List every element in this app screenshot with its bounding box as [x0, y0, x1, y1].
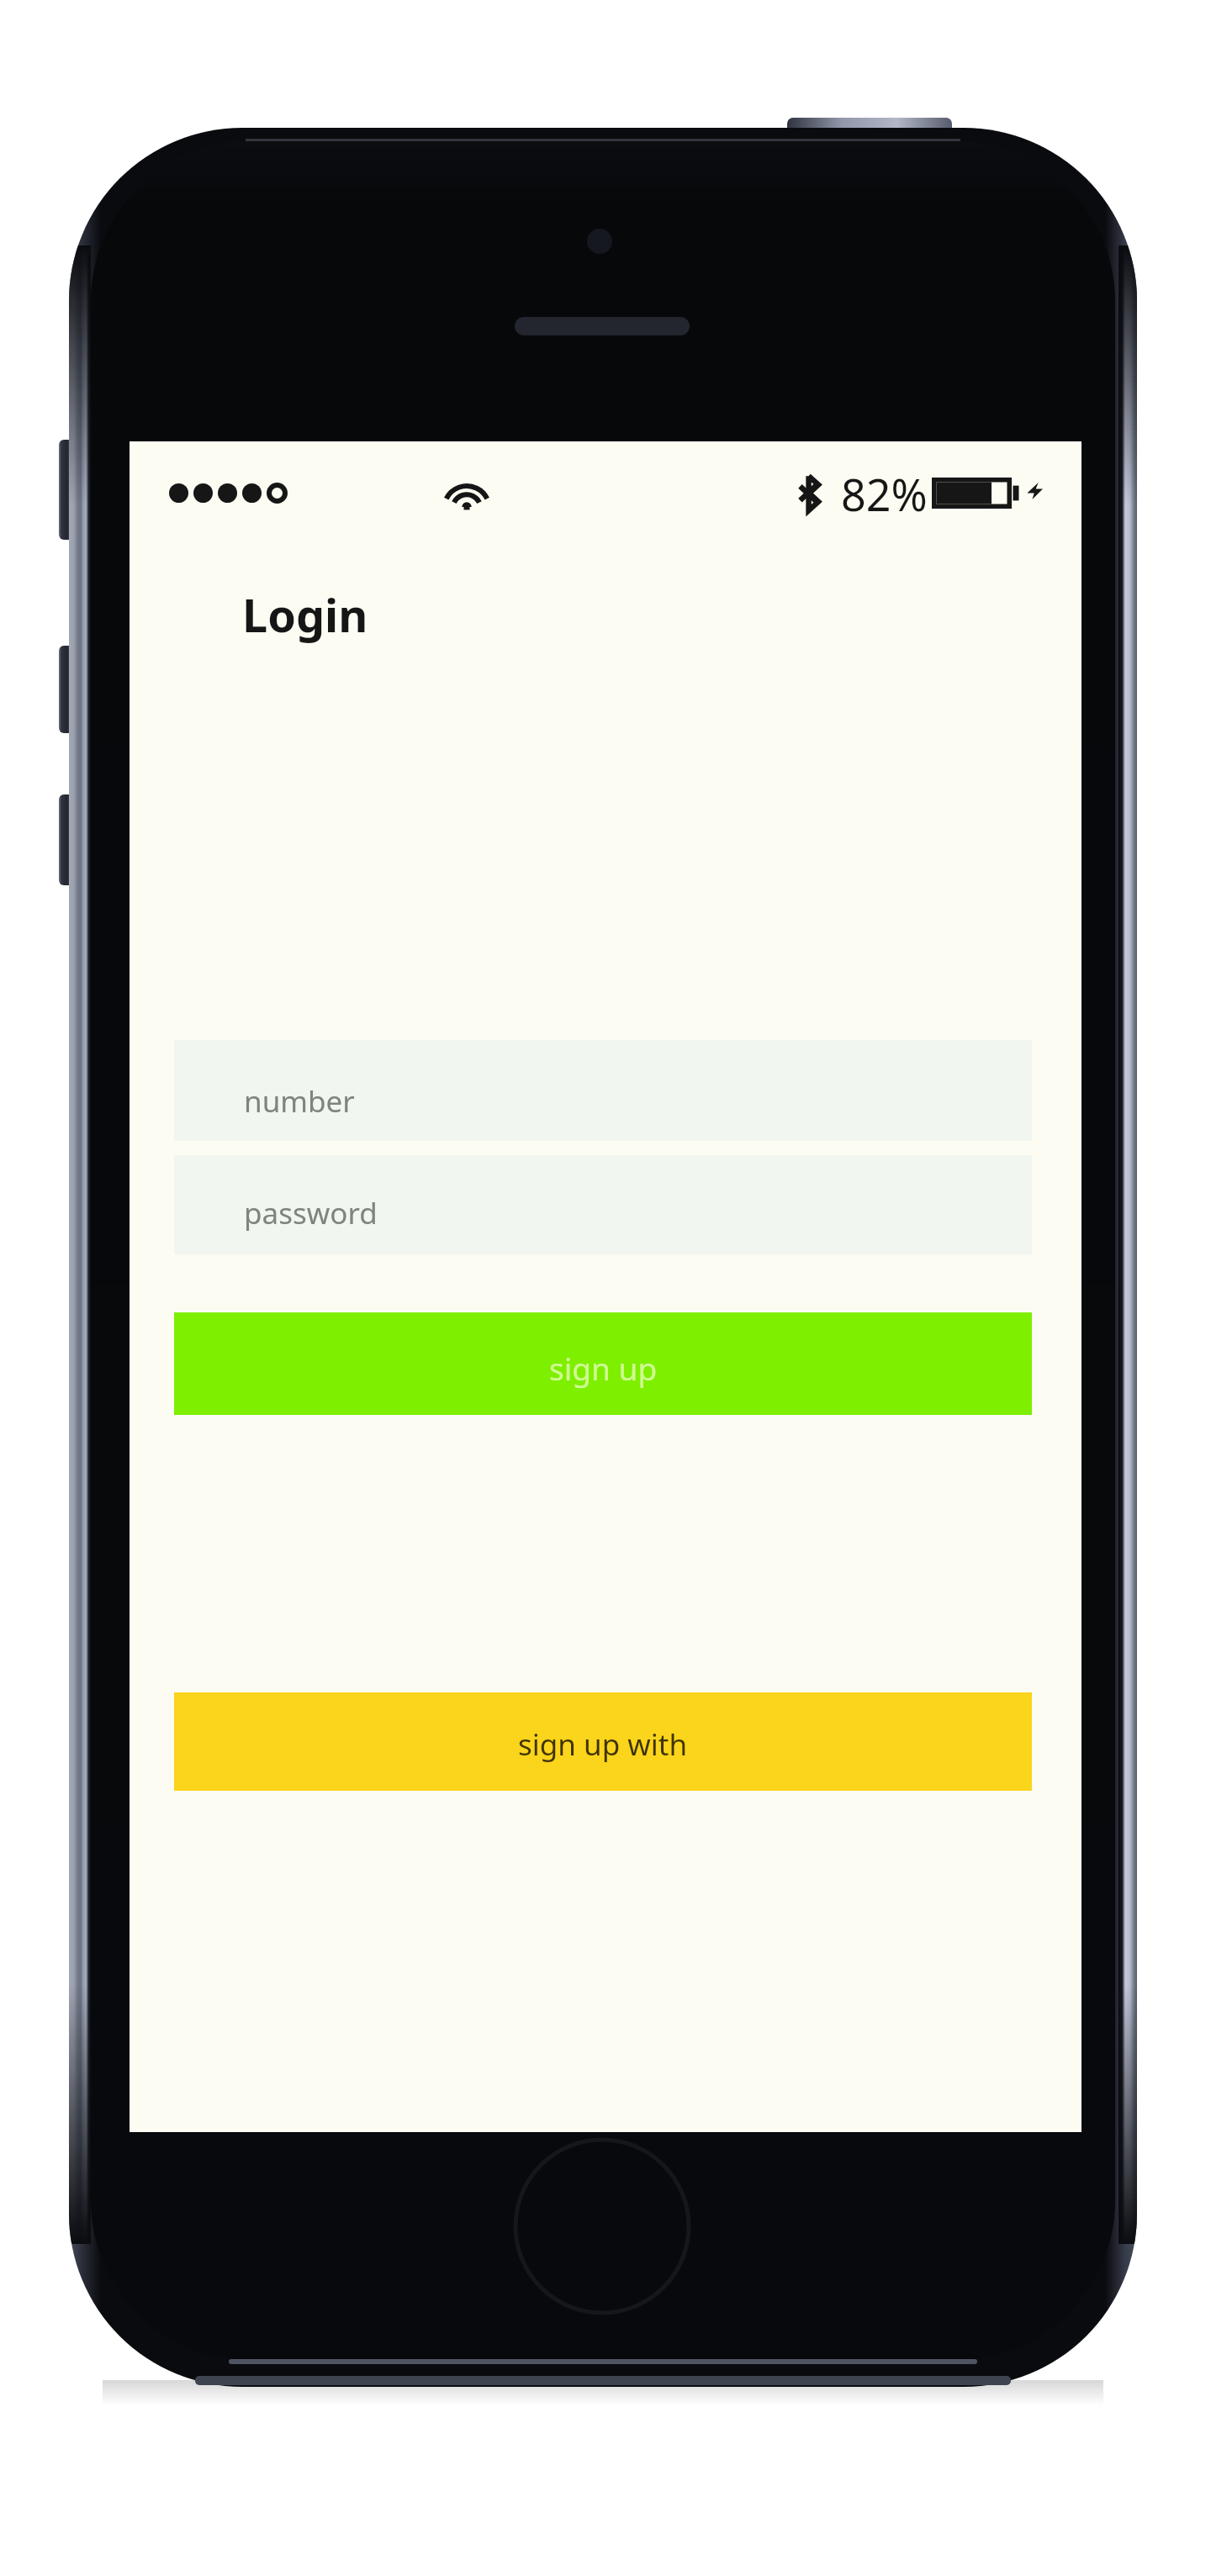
- button[interactable]: number: [174, 1040, 1032, 1141]
- button[interactable]: Home: [513, 2137, 691, 2315]
- button[interactable]: password: [174, 1155, 1032, 1254]
- staticText: sign up with: [518, 1724, 688, 1765]
- button[interactable]: sign up with: [174, 1692, 1032, 1791]
- staticText: password: [244, 1193, 378, 1233]
- staticText: number: [244, 1081, 355, 1122]
- button[interactable]: sign up: [174, 1312, 1032, 1415]
- staticText: Login: [242, 583, 368, 646]
- staticText: sign up: [549, 1347, 658, 1389]
- staticText: 82%: [841, 464, 928, 524]
